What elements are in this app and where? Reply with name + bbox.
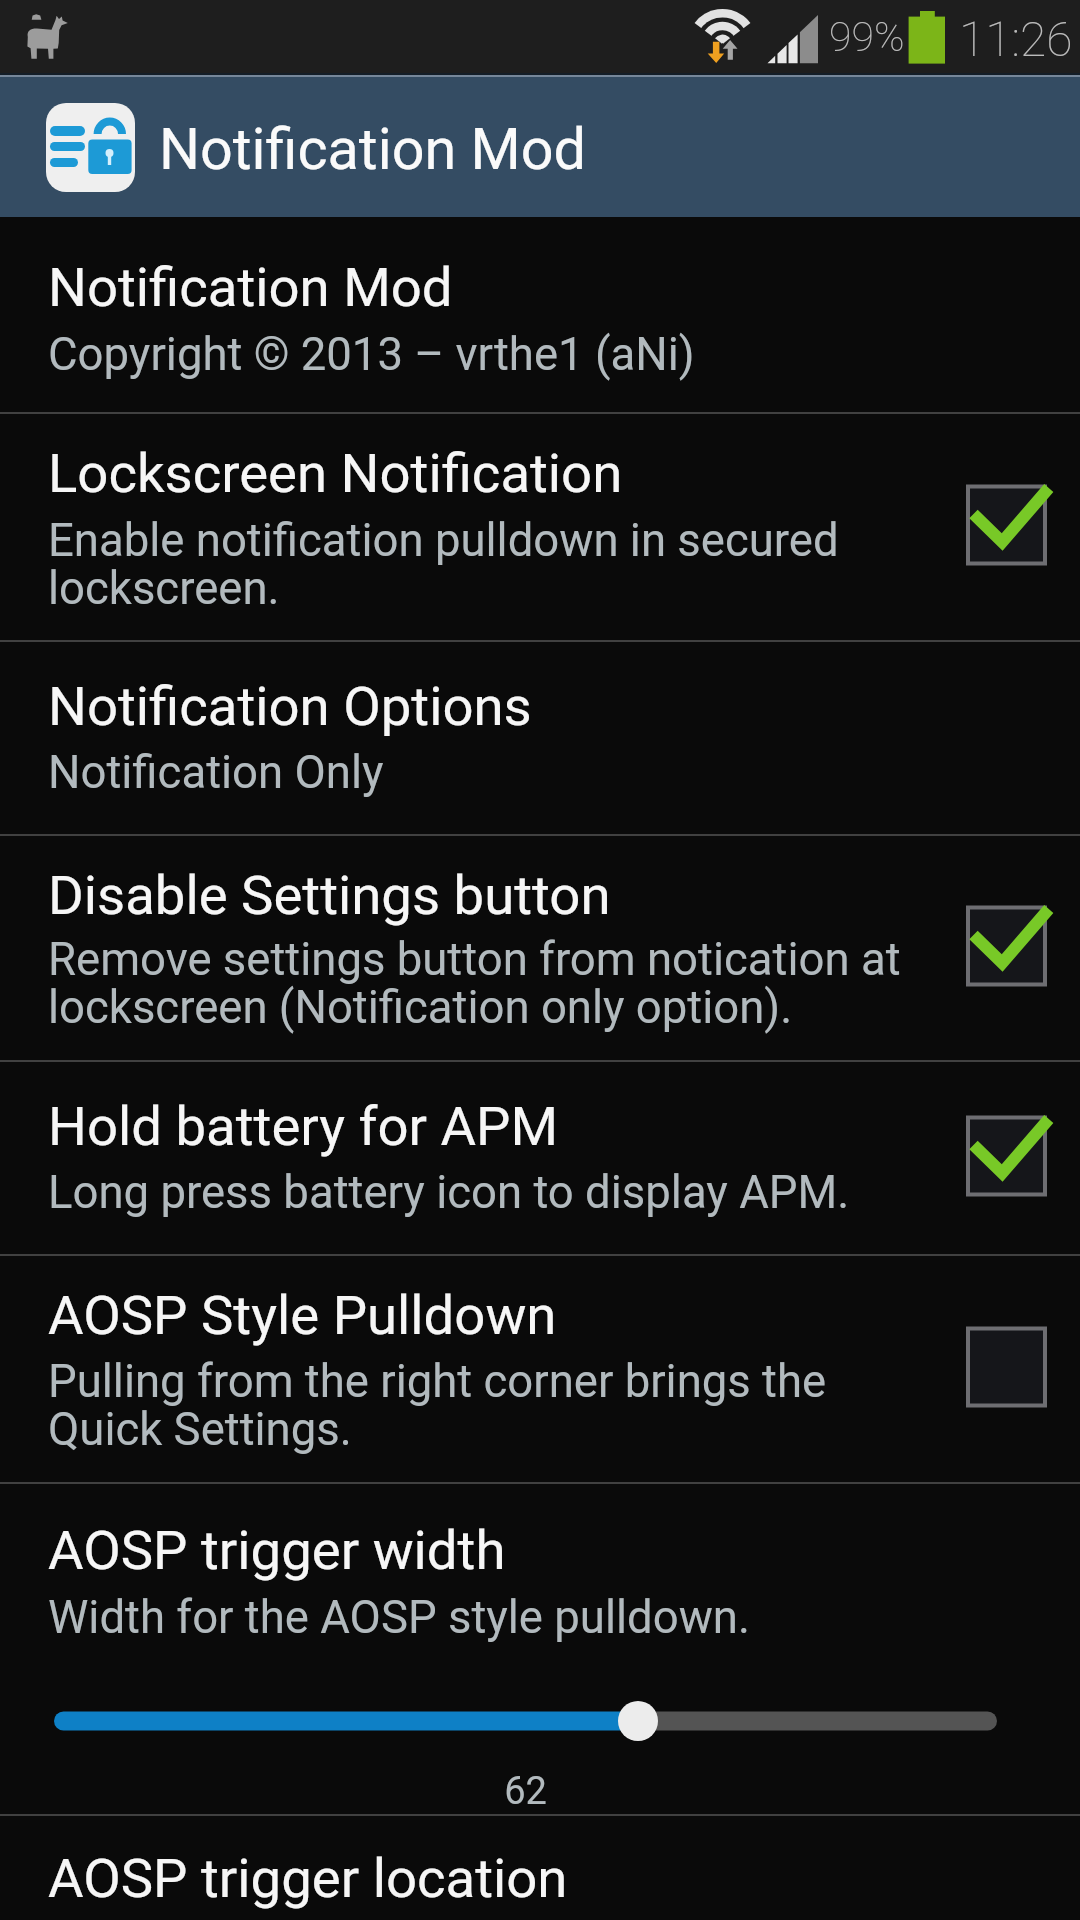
button[interactable]: Lockscreen Notification toggle xyxy=(950,472,1060,582)
staticText: Enable notification pulldown in secured … xyxy=(48,514,930,615)
button[interactable]: AOSP Style Pulldown xyxy=(0,1256,1080,1482)
button[interactable]: Notification Options xyxy=(0,642,1080,834)
staticText: Hold battery for APM xyxy=(48,1094,559,1158)
button[interactable]: Hold battery for APM xyxy=(0,1062,1080,1254)
staticText: Disable Settings button xyxy=(48,863,611,927)
button[interactable]: Notification Mod xyxy=(0,217,1080,412)
button[interactable]: Hold battery for APM toggle xyxy=(950,1103,1060,1213)
staticText: Notification Mod xyxy=(159,116,586,183)
staticText: Lockscreen Notification xyxy=(48,441,623,505)
staticText: 62 xyxy=(0,1769,1051,1814)
button[interactable]: Notification Mod xyxy=(0,77,1080,217)
staticText: AOSP Style Pulldown xyxy=(48,1283,557,1347)
staticText: Notification Mod xyxy=(48,255,453,319)
button[interactable]: Lockscreen Notification xyxy=(0,414,1080,640)
staticText: AOSP trigger width xyxy=(48,1518,506,1582)
staticText: AOSP trigger location xyxy=(48,1846,568,1910)
staticText: 11:26 xyxy=(959,11,1073,67)
staticText: Notification Options xyxy=(48,674,532,738)
staticText: Long press battery icon to display APM. xyxy=(48,1166,850,1219)
staticText: Remove settings button from notication a… xyxy=(48,933,930,1034)
button[interactable]: AOSP Style Pulldown toggle xyxy=(950,1314,1060,1424)
staticText: Pulling from the right corner brings the… xyxy=(48,1355,930,1456)
button[interactable]: AOSP trigger location xyxy=(0,1816,1080,1920)
staticText: Notification Only xyxy=(48,746,384,799)
staticText: Copyright © 2013 – vrthe1 (aNi) xyxy=(48,328,695,381)
staticText: Width for the AOSP style pulldown. xyxy=(48,1591,750,1644)
button[interactable]: Disable Settings button toggle xyxy=(950,893,1060,1003)
staticText: 99% xyxy=(829,13,905,61)
button[interactable]: AOSP trigger width xyxy=(0,1484,1080,1814)
button[interactable]: Disable Settings button xyxy=(0,836,1080,1060)
